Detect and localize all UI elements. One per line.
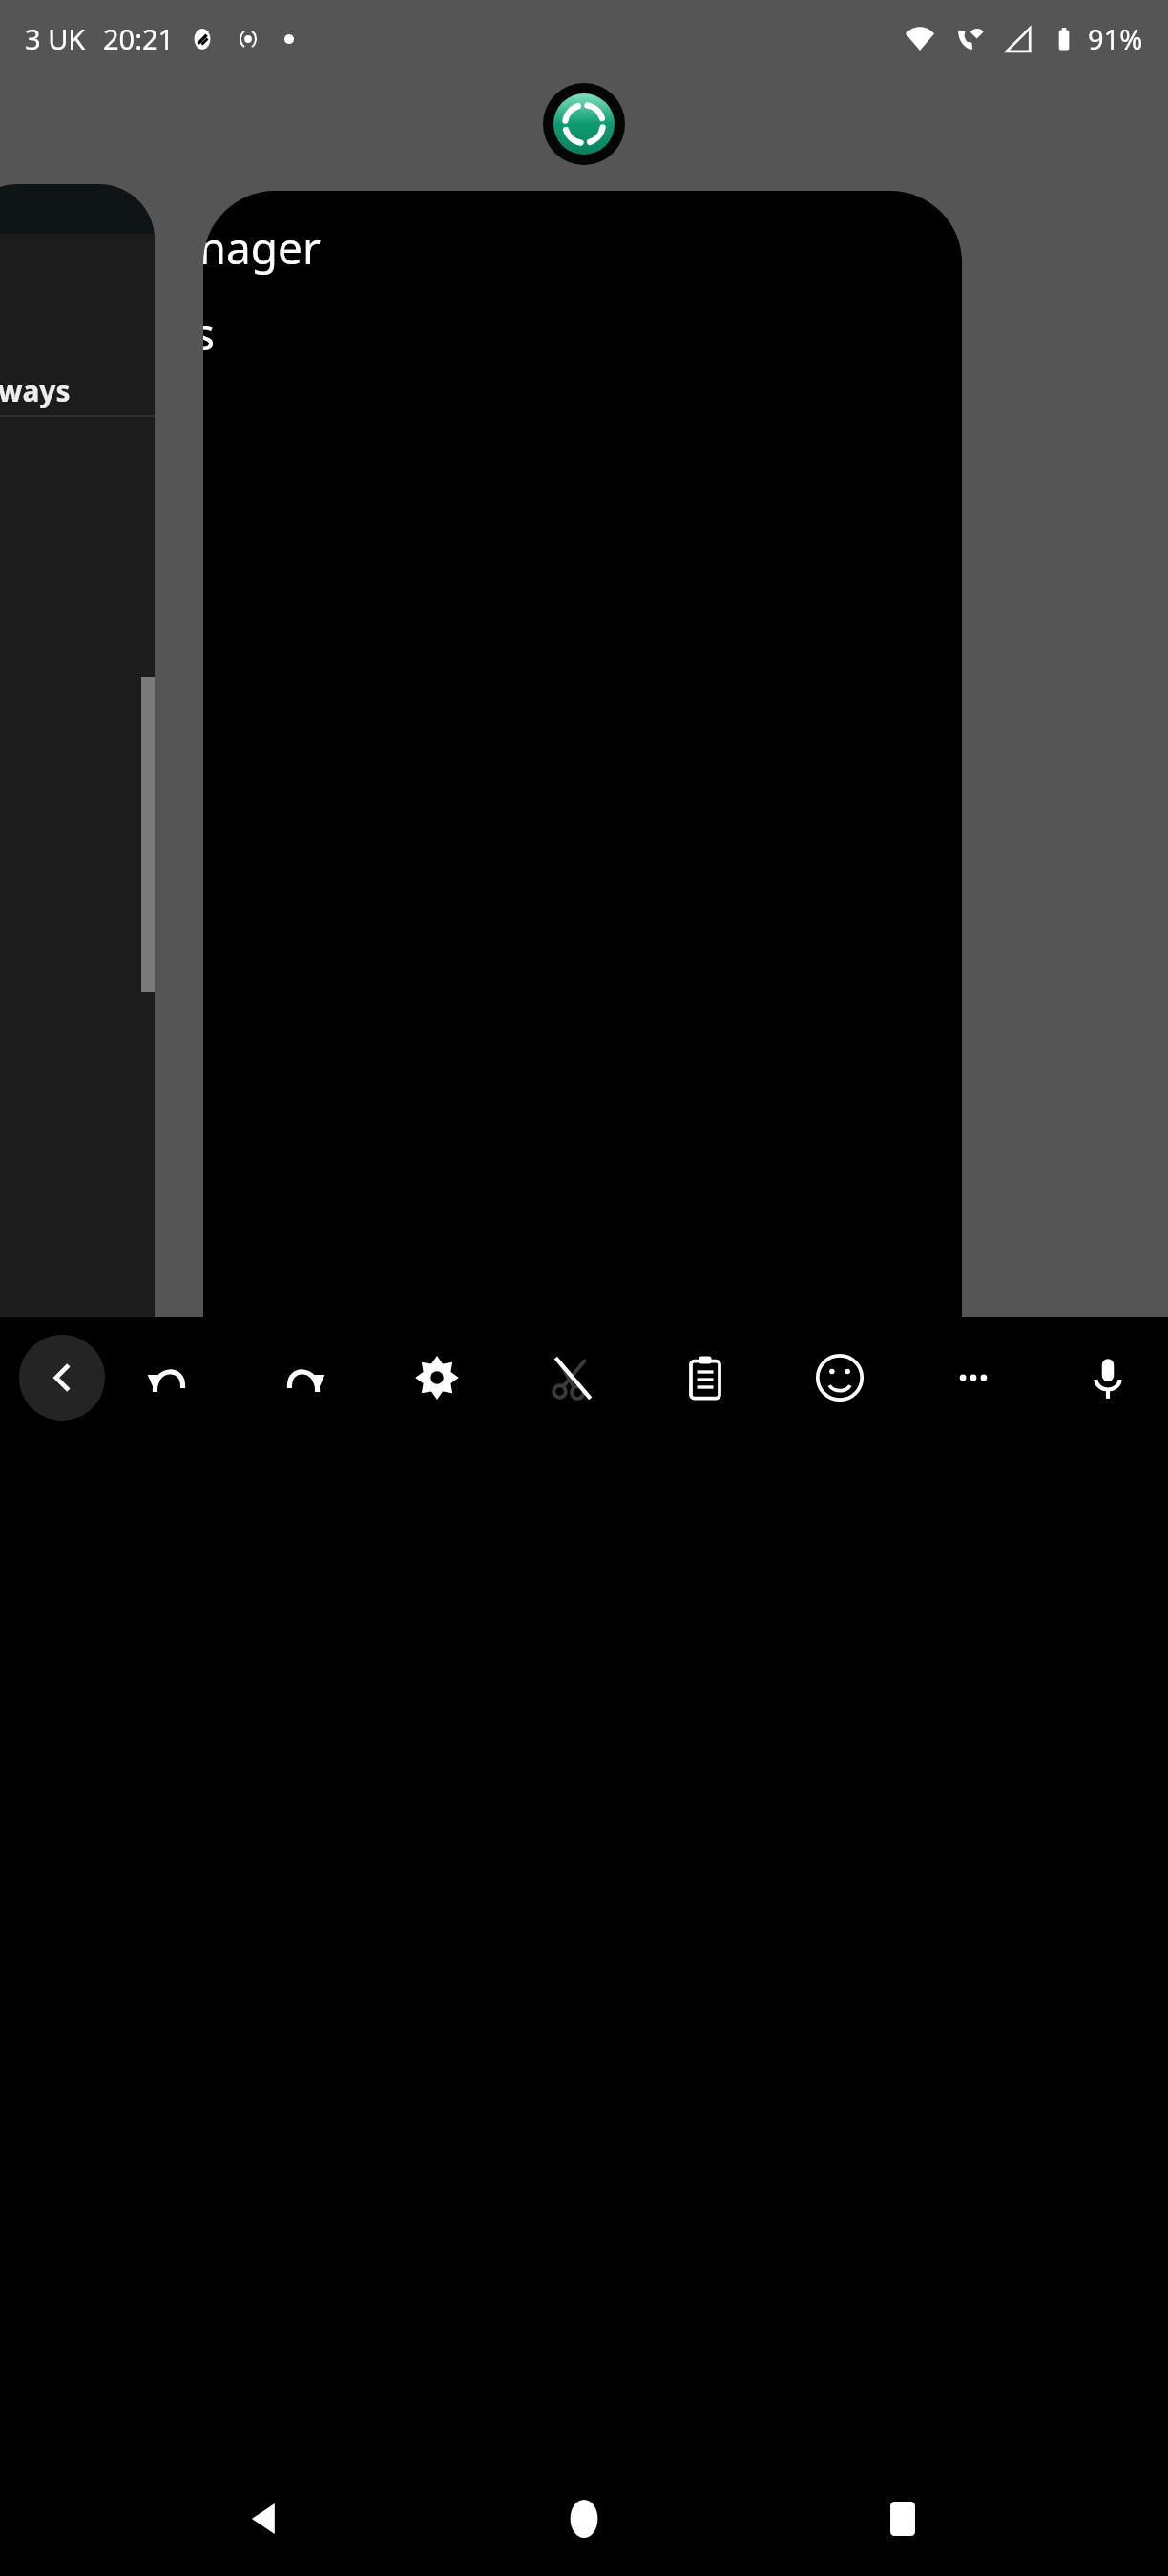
button[interactable]: Redo	[268, 1342, 339, 1413]
button[interactable]: Cut	[536, 1342, 607, 1413]
button[interactable]: Recents	[850, 2466, 955, 2571]
button[interactable]: Back	[19, 1335, 105, 1421]
staticText: s	[203, 303, 216, 364]
button[interactable]: Settings	[402, 1342, 472, 1413]
staticText: 20:21	[103, 20, 175, 57]
button[interactable]: Home	[532, 2466, 636, 2571]
button[interactable]: More options	[938, 1342, 1009, 1413]
button[interactable]: Manager	[203, 191, 962, 1317]
button[interactable]: Always	[0, 184, 155, 1317]
staticText: 3 UK	[25, 20, 86, 57]
button[interactable]: Clipboard	[670, 1342, 740, 1413]
button[interactable]: Back	[214, 2466, 319, 2571]
button[interactable]: Voice input	[1073, 1342, 1143, 1413]
button[interactable]: Undo	[134, 1342, 204, 1413]
staticText: 91%	[1088, 20, 1143, 57]
button[interactable]: Emoji	[804, 1342, 875, 1413]
staticText: Always	[0, 371, 71, 410]
button[interactable]: App icon	[543, 83, 625, 165]
staticText: Manager	[203, 218, 321, 278]
